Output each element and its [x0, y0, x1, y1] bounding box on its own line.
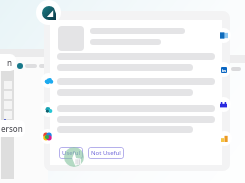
button[interactable]: Useful: [59, 147, 83, 159]
button[interactable]: Not Useful: [88, 147, 124, 159]
button[interactable]: LinkedIn: [216, 62, 231, 77]
staticText: in: [222, 68, 226, 73]
button[interactable]: Photos: [40, 129, 55, 144]
button[interactable]: Analytics: [217, 131, 232, 146]
button[interactable]: Messenger: [216, 97, 231, 112]
staticText: n: [7, 57, 13, 68]
button[interactable]: Teams: [41, 102, 56, 117]
staticText: Not Useful: [91, 149, 121, 157]
button[interactable]: Skype: [41, 73, 56, 88]
button[interactable]: App logo: [36, 0, 61, 25]
staticText: Useful: [62, 149, 80, 157]
button[interactable]: Outlook: [216, 28, 231, 43]
staticText: erson: [1, 123, 23, 134]
